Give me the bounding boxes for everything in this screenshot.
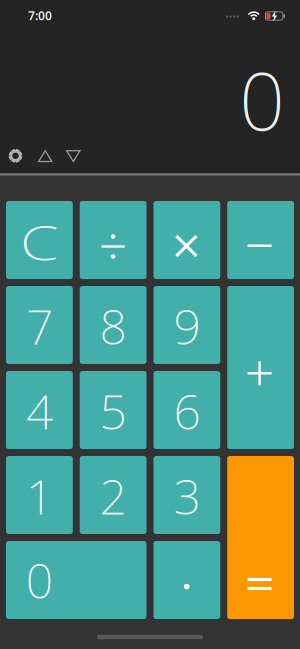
button[interactable]: C — [6, 201, 73, 279]
button[interactable]: 6 — [153, 371, 220, 449]
button[interactable]: Settings — [4, 145, 26, 167]
button[interactable]: 9 — [153, 286, 220, 364]
staticText: 4 — [26, 379, 53, 443]
button[interactable]: Equals — [227, 456, 294, 619]
button[interactable]: Scroll up — [34, 145, 56, 167]
button[interactable]: Divide — [80, 201, 146, 279]
button[interactable]: Add — [227, 286, 294, 449]
staticText: 0 — [239, 46, 285, 152]
button[interactable]: 2 — [80, 456, 146, 534]
button[interactable]: 1 — [6, 456, 73, 534]
button[interactable]: 5 — [80, 371, 146, 449]
staticText: 7 — [26, 294, 53, 358]
staticText: 2 — [100, 464, 127, 528]
staticText: 9 — [173, 294, 200, 358]
button[interactable]: Multiply — [153, 201, 220, 279]
staticText: 1 — [26, 464, 53, 528]
staticText: 7:00 — [28, 7, 52, 23]
button[interactable]: 3 — [153, 456, 220, 534]
button[interactable]: Subtract — [227, 201, 294, 279]
button[interactable]: 7 — [6, 286, 73, 364]
staticText: C — [24, 210, 54, 274]
button[interactable]: 4 — [6, 371, 73, 449]
staticText: 0 — [26, 548, 53, 612]
staticText: 3 — [173, 464, 200, 528]
staticText: 5 — [100, 379, 127, 443]
button[interactable]: Scroll down — [62, 145, 84, 167]
button[interactable]: 0 — [6, 541, 146, 619]
staticText: 8 — [100, 294, 127, 358]
button[interactable]: Decimal point — [153, 541, 220, 619]
staticText: 6 — [173, 379, 200, 443]
button[interactable]: 8 — [80, 286, 146, 364]
